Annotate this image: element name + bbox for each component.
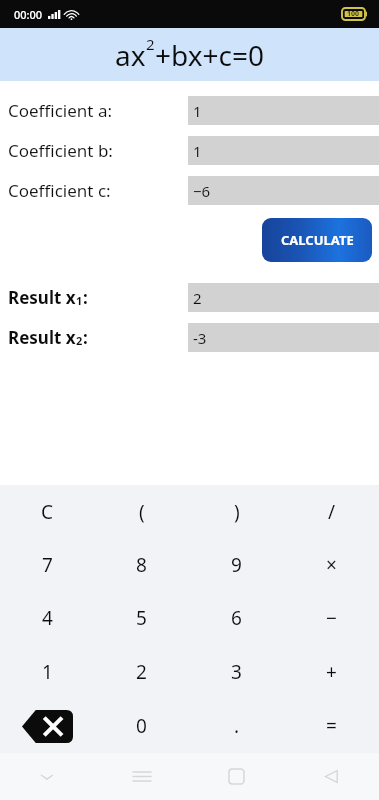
- staticText: 2: [76, 333, 83, 348]
- button[interactable]: 2: [188, 283, 379, 312]
- staticText: 1: [193, 101, 202, 121]
- staticText: 2: [193, 288, 202, 308]
- staticText: .: [234, 713, 240, 739]
- staticText: C: [41, 499, 54, 525]
- staticText: Coefficient b:: [8, 139, 113, 162]
- button[interactable]: Back: [284, 753, 379, 800]
- staticText: -3: [193, 328, 207, 348]
- staticText: 8: [136, 552, 147, 578]
- button[interactable]: ): [189, 485, 284, 538]
- staticText: CALCULATE: [281, 231, 354, 249]
- staticText: ): [234, 499, 240, 525]
- button[interactable]: 1: [188, 96, 379, 125]
- button[interactable]: +: [284, 645, 379, 699]
- staticText: 2: [146, 34, 155, 54]
- button[interactable]: 5: [94, 591, 189, 645]
- button[interactable]: −: [284, 591, 379, 645]
- button[interactable]: 1: [188, 136, 379, 165]
- staticText: ax: [115, 36, 146, 74]
- staticText: 3: [231, 659, 242, 685]
- button[interactable]: -3: [188, 323, 379, 352]
- button[interactable]: .: [189, 699, 284, 753]
- button[interactable]: 7: [0, 538, 94, 591]
- button[interactable]: 6: [189, 591, 284, 645]
- button[interactable]: 2: [94, 645, 189, 699]
- button[interactable]: =: [284, 699, 379, 753]
- staticText: −6: [193, 181, 211, 201]
- staticText: :: [83, 286, 88, 309]
- staticText: =: [326, 713, 337, 739]
- button[interactable]: 8: [94, 538, 189, 591]
- button[interactable]: (: [94, 485, 189, 538]
- staticText: 00:00: [14, 7, 43, 22]
- button[interactable]: 9: [189, 538, 284, 591]
- staticText: Coefficient c:: [8, 179, 111, 202]
- staticText: /: [328, 499, 336, 525]
- button[interactable]: 1: [0, 645, 94, 699]
- button[interactable]: C: [0, 485, 94, 538]
- staticText: 100: [347, 9, 360, 19]
- staticText: 4: [42, 605, 53, 631]
- staticText: ×: [326, 552, 337, 578]
- staticText: 0: [136, 713, 147, 739]
- staticText: +bx+c=0: [155, 36, 264, 74]
- button[interactable]: 0: [94, 699, 189, 753]
- staticText: Result x: [8, 286, 76, 309]
- button[interactable]: 3: [189, 645, 284, 699]
- staticText: 1: [76, 293, 83, 308]
- button[interactable]: Menu: [94, 753, 189, 800]
- staticText: :: [83, 326, 88, 349]
- button[interactable]: Home: [189, 753, 284, 800]
- staticText: −: [326, 605, 337, 631]
- button[interactable]: CALCULATE: [262, 218, 372, 262]
- button[interactable]: 4: [0, 591, 94, 645]
- button[interactable]: −6: [188, 176, 379, 205]
- staticText: 1: [42, 659, 53, 685]
- staticText: 6: [231, 605, 242, 631]
- staticText: 5: [136, 605, 147, 631]
- staticText: (: [139, 499, 145, 525]
- staticText: Result x: [8, 326, 76, 349]
- staticText: 2: [136, 659, 147, 685]
- staticText: +: [326, 659, 337, 685]
- staticText: 9: [231, 552, 242, 578]
- staticText: 1: [193, 141, 202, 161]
- button[interactable]: /: [284, 485, 379, 538]
- button[interactable]: ×: [284, 538, 379, 591]
- staticText: Coefficient a:: [8, 99, 112, 122]
- staticText: 7: [42, 552, 53, 578]
- button[interactable]: Backspace: [0, 699, 94, 753]
